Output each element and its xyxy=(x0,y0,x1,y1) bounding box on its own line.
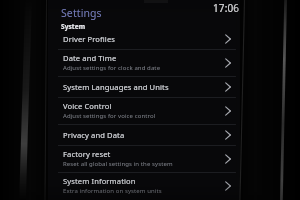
staticText: Factory reset xyxy=(63,149,111,159)
staticText: Voice Control xyxy=(63,101,112,111)
other: Driver Profiles xyxy=(214,28,240,49)
button[interactable]: Privacy and Data xyxy=(48,124,240,145)
other: Date and Time xyxy=(214,49,240,76)
staticText: System Information xyxy=(63,176,136,186)
button[interactable]: Driver Profiles xyxy=(48,28,240,49)
staticText: Adjust settings for voice control xyxy=(63,112,156,120)
staticText: System xyxy=(61,22,86,31)
staticText: Date and Time xyxy=(63,53,117,63)
button[interactable]: Factory reset xyxy=(48,145,240,172)
staticText: Privacy and Data xyxy=(63,130,125,140)
other: System Information xyxy=(214,172,240,199)
other: Voice Control xyxy=(214,97,240,124)
button[interactable]: System Languages and Units xyxy=(48,76,240,97)
other: System Languages and Units xyxy=(214,76,240,97)
button[interactable]: Voice Control xyxy=(48,97,240,124)
staticText: Adjust settings for clock and date xyxy=(63,64,161,72)
staticText: Settings xyxy=(61,6,102,20)
staticText: Reset all global settings in the system xyxy=(63,160,173,168)
button[interactable]: Date and Time xyxy=(48,49,240,76)
staticText: 17:06 xyxy=(213,1,240,15)
other: Factory reset xyxy=(214,145,240,172)
staticText: System Languages and Units xyxy=(63,82,169,92)
button[interactable]: System Information xyxy=(48,172,240,199)
staticText: Driver Profiles xyxy=(63,34,116,44)
other: Privacy and Data xyxy=(214,124,240,145)
staticText: Extra information on system units xyxy=(63,187,162,195)
